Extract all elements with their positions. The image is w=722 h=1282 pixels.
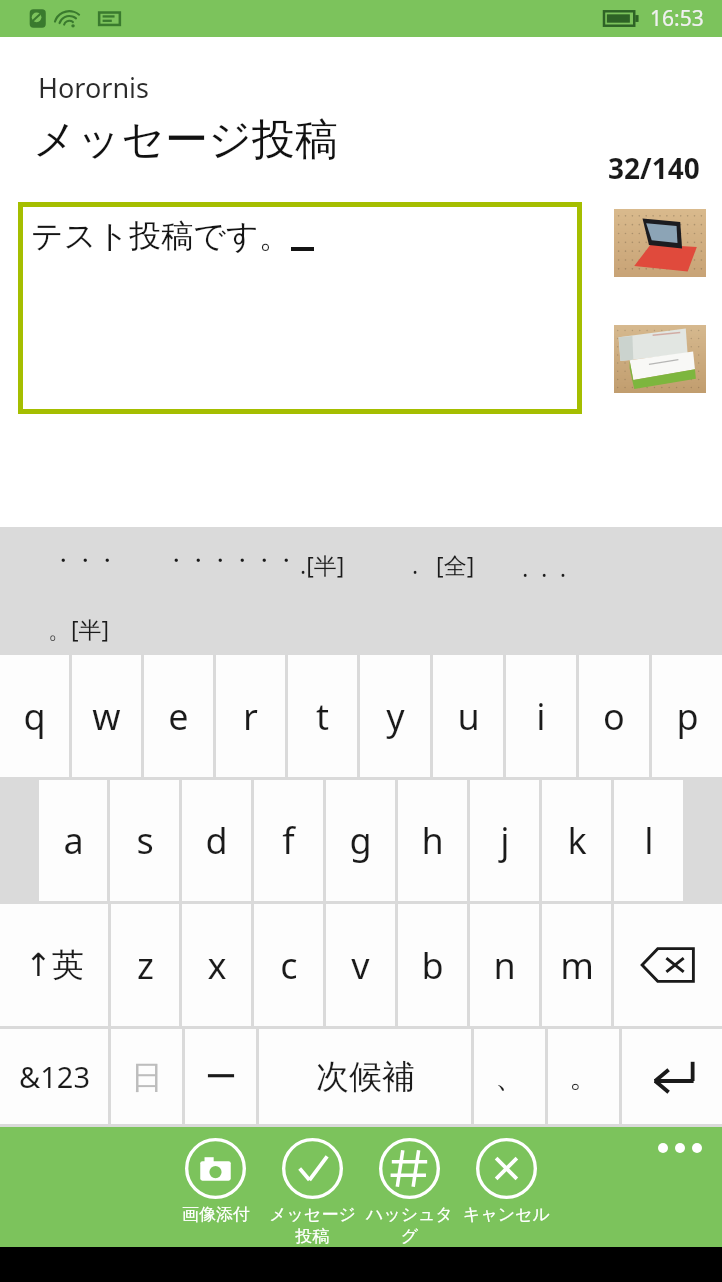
staticText: m: [560, 941, 594, 990]
staticText: a: [63, 816, 84, 865]
button[interactable]: キャンセル: [458, 1138, 555, 1225]
staticText: &123: [19, 1057, 90, 1096]
staticText: u: [457, 692, 480, 741]
button[interactable]: Backspace: [614, 904, 722, 1026]
staticText: ・・・・・・: [165, 547, 297, 575]
button[interactable]: m: [542, 904, 611, 1026]
button[interactable]: c: [254, 904, 323, 1026]
staticText: テスト投稿です。: [31, 216, 291, 256]
staticText: n: [493, 941, 516, 990]
button[interactable]: r: [216, 655, 285, 777]
staticText: 、: [495, 1058, 525, 1096]
button[interactable]: メッセージ 投稿: [264, 1138, 361, 1247]
button[interactable]: s: [110, 780, 179, 901]
button[interactable]: o: [579, 655, 649, 777]
button[interactable]: テスト投稿です。: [18, 202, 582, 414]
staticText: e: [168, 692, 189, 741]
button[interactable]: p: [652, 655, 722, 777]
button[interactable]: z: [111, 904, 179, 1026]
staticText: ハッシュタ グ: [366, 1204, 453, 1247]
button[interactable]: 、: [474, 1029, 545, 1124]
button[interactable]: x: [182, 904, 251, 1026]
staticText: v: [351, 941, 370, 990]
staticText: 32/140: [608, 149, 700, 187]
button[interactable]: q: [0, 655, 69, 777]
button[interactable]: u: [433, 655, 503, 777]
button[interactable]: 画像添付: [167, 1138, 264, 1225]
button[interactable]: h: [398, 780, 467, 901]
staticText: i: [536, 692, 546, 741]
button[interactable]: f: [254, 780, 323, 901]
button[interactable]: j: [470, 780, 539, 901]
button[interactable]: a: [39, 780, 107, 901]
staticText: q: [23, 692, 46, 741]
staticText: c: [280, 941, 298, 990]
button[interactable]: n: [470, 904, 539, 1026]
staticText: y: [386, 692, 405, 741]
staticText: g: [349, 816, 372, 865]
staticText: . [全]: [412, 549, 475, 580]
staticText: t: [316, 692, 329, 741]
staticText: h: [421, 816, 444, 865]
button[interactable]: g: [326, 780, 395, 901]
button[interactable]: t: [288, 655, 357, 777]
staticText: .[半]: [300, 549, 345, 580]
staticText: 16:53: [650, 4, 704, 33]
staticText: p: [676, 692, 699, 741]
staticText: メッセージ 投稿: [269, 1204, 356, 1247]
button[interactable]: ハッシュタ グ: [361, 1138, 458, 1247]
staticText: b: [421, 941, 444, 990]
staticText: o: [603, 692, 625, 741]
button[interactable]: k: [542, 780, 611, 901]
staticText: ↑英: [25, 945, 84, 985]
staticText: s: [136, 816, 154, 865]
staticText: メッセージ投稿: [33, 113, 339, 167]
staticText: w: [92, 692, 121, 741]
button[interactable]: Attached image 1: [614, 209, 706, 277]
staticText: z: [137, 941, 154, 990]
staticText: k: [567, 816, 587, 865]
button[interactable]: w: [72, 655, 141, 777]
button[interactable]: 次候補: [259, 1029, 471, 1124]
button[interactable]: Enter: [622, 1029, 722, 1124]
button[interactable]: d: [182, 780, 251, 901]
staticText: l: [644, 816, 654, 865]
staticText: 日: [131, 1057, 163, 1097]
button[interactable]: 。: [548, 1029, 619, 1124]
staticText: x: [207, 941, 227, 990]
button[interactable]: e: [144, 655, 213, 777]
staticText: d: [205, 816, 228, 865]
staticText: j: [500, 816, 510, 865]
button[interactable]: v: [326, 904, 395, 1026]
staticText: ・・・: [52, 547, 118, 575]
staticText: . . .: [522, 551, 567, 584]
staticText: 。: [569, 1058, 599, 1096]
button[interactable]: ー: [185, 1029, 256, 1124]
button[interactable]: Input mode: [111, 1029, 182, 1124]
staticText: Horornis: [38, 69, 150, 106]
button[interactable]: &123: [0, 1029, 108, 1124]
button[interactable]: i: [506, 655, 576, 777]
staticText: f: [282, 816, 295, 865]
button[interactable]: Attached image 2: [614, 325, 706, 393]
staticText: 。[半]: [48, 613, 110, 644]
button[interactable]: ↑英: [0, 904, 108, 1026]
button[interactable]: b: [398, 904, 467, 1026]
staticText: ー: [205, 1057, 237, 1097]
staticText: 画像添付: [182, 1204, 250, 1225]
staticText: r: [243, 692, 258, 741]
button[interactable]: More options: [652, 1137, 708, 1159]
button[interactable]: y: [360, 655, 430, 777]
staticText: キャンセル: [463, 1204, 550, 1225]
button[interactable]: l: [614, 780, 683, 901]
staticText: 次候補: [316, 1056, 415, 1098]
